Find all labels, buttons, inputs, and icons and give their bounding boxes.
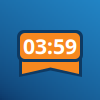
staticText: 03:59 [23, 32, 77, 60]
button[interactable]: Timer 03:59 [0, 0, 100, 100]
